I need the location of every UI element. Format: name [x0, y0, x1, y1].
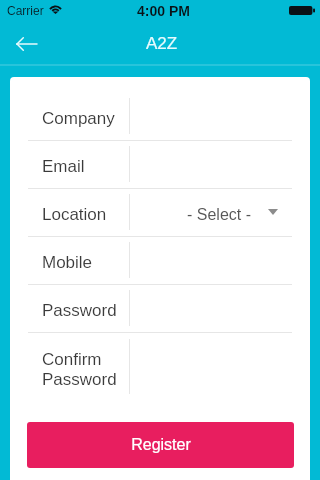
staticText: Carrier [7, 4, 44, 17]
button[interactable]: Company [10, 92, 310, 140]
button[interactable]: Password [10, 284, 310, 332]
button[interactable]: Register [27, 422, 294, 468]
button[interactable]: Confirm Password [10, 332, 310, 396]
staticText: A2Z [146, 34, 178, 53]
staticText: Email [42, 157, 85, 176]
staticText: Password [42, 301, 117, 320]
button[interactable]: Back [0, 21, 50, 64]
staticText: Company [42, 109, 115, 128]
button[interactable]: Mobile [10, 236, 310, 284]
staticText: 4:00 PM [137, 3, 190, 19]
button[interactable]: Location [10, 188, 310, 236]
staticText: - Select - [187, 206, 252, 224]
button[interactable]: Email [10, 140, 310, 188]
staticText: Register [131, 436, 191, 454]
staticText: Confirm Password [42, 350, 117, 389]
staticText: Mobile [42, 253, 93, 272]
staticText: Location [42, 205, 107, 224]
